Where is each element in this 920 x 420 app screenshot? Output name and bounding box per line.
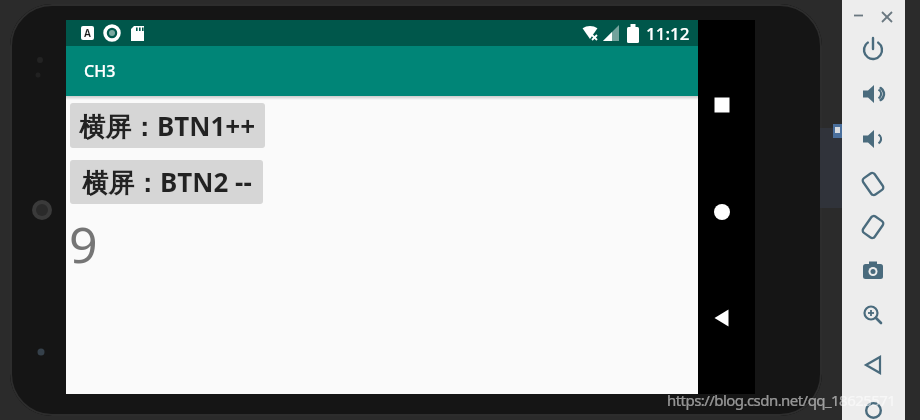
button[interactable] <box>862 260 884 282</box>
staticText: 横屏：BTN1++ <box>79 108 256 144</box>
button[interactable] <box>702 298 750 338</box>
staticText: 11:12 <box>646 22 690 45</box>
button[interactable] <box>702 192 750 232</box>
staticText: https://blog.csdn.net/qq_18625571 <box>667 390 896 410</box>
button[interactable]: 横屏：BTN1++ <box>70 103 265 148</box>
button[interactable] <box>862 83 884 105</box>
button[interactable] <box>862 349 884 371</box>
button[interactable] <box>862 39 884 61</box>
button[interactable] <box>702 85 750 125</box>
button[interactable] <box>862 128 884 150</box>
button[interactable] <box>862 216 884 238</box>
staticText: CH3 <box>84 60 116 82</box>
button[interactable] <box>862 173 884 195</box>
staticText: 横屏：BTN2 -- <box>82 164 252 200</box>
button[interactable] <box>862 396 884 418</box>
staticText: 9 <box>69 210 98 278</box>
staticText: A <box>84 26 91 40</box>
button[interactable]: 横屏：BTN2 -- <box>70 160 263 204</box>
button[interactable] <box>862 304 884 326</box>
